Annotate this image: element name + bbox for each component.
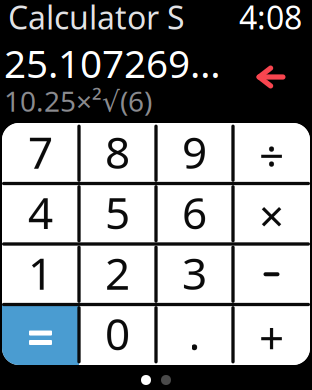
button[interactable]: . xyxy=(156,304,233,365)
staticText: . xyxy=(188,304,200,362)
button[interactable]: 6 xyxy=(156,183,233,244)
staticText: 2 xyxy=(105,243,130,302)
button[interactable]: 1 xyxy=(2,244,79,304)
button[interactable]: Delete xyxy=(247,57,295,97)
staticText: 5 xyxy=(105,183,130,241)
staticText: 25.107269… xyxy=(4,37,221,89)
button[interactable]: ÷ xyxy=(233,123,310,183)
button[interactable]: 3 xyxy=(156,244,233,304)
staticText: + xyxy=(259,308,284,366)
staticText: 9 xyxy=(182,122,207,181)
button[interactable]: × xyxy=(233,183,310,244)
button[interactable]: 9 xyxy=(156,123,233,183)
button[interactable]: 7 xyxy=(2,123,79,183)
button[interactable]: Equals xyxy=(2,304,79,365)
staticText: 10.25×²√(6) xyxy=(4,82,152,120)
staticText: 7 xyxy=(28,122,53,181)
button[interactable]: 0 xyxy=(79,304,156,365)
staticText: × xyxy=(259,186,284,244)
staticText: 4:08 xyxy=(239,0,302,38)
button[interactable]: 2 xyxy=(79,244,156,304)
button[interactable]: 5 xyxy=(79,183,156,244)
button[interactable]: + xyxy=(233,304,310,365)
staticText: 8 xyxy=(105,122,130,181)
staticText: 4 xyxy=(28,183,53,241)
button[interactable]: 8 xyxy=(79,123,156,183)
staticText: 1 xyxy=(28,243,53,302)
staticText: Calculator S xyxy=(8,0,185,38)
staticText: 0 xyxy=(105,304,130,362)
button[interactable]: 4 xyxy=(2,183,79,244)
staticText: 6 xyxy=(182,183,207,241)
staticText: 3 xyxy=(182,243,207,302)
button[interactable]: Minus xyxy=(233,244,310,304)
staticText: ÷ xyxy=(259,125,284,184)
